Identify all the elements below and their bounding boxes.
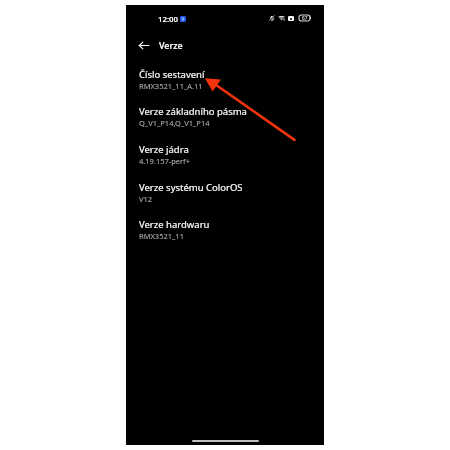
staticText: 12:00 (158, 14, 178, 25)
staticText: Číslo sestavení (139, 68, 205, 81)
staticText: Q_V1_P14,Q_V1_P14 (139, 118, 210, 128)
button[interactable]: Číslo sestavení (126, 63, 324, 100)
staticText: V12 (139, 194, 153, 204)
button[interactable]: Verze základního pásma (126, 100, 324, 137)
staticText: Verze základního pásma (139, 105, 247, 118)
staticText: RMX3521_11_A.11 (139, 81, 203, 91)
button[interactable]: Verze hardwaru (126, 213, 324, 250)
button[interactable]: Verze jádra (126, 138, 324, 175)
staticText: Verze hardwaru (139, 218, 210, 231)
staticText: 67 (302, 15, 308, 21)
staticText: Verze (159, 39, 183, 51)
staticText: Verze jádra (139, 143, 189, 156)
button[interactable]: Verze systému ColorOS (126, 176, 324, 213)
staticText: Verze systému ColorOS (139, 181, 243, 194)
staticText: 4.19.157-perf+ (139, 156, 190, 166)
staticText: RMX3521_11 (139, 231, 184, 241)
button[interactable]: Back (134, 35, 154, 55)
